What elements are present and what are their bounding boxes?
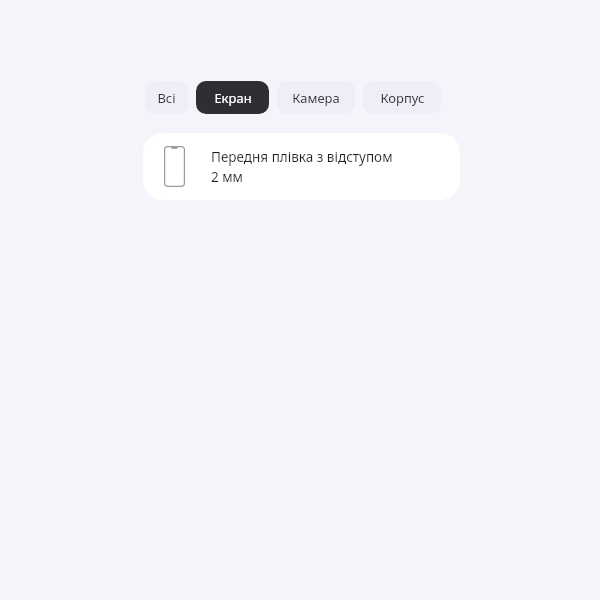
button[interactable]: Всі: [145, 81, 188, 114]
staticText: Передня плівка з відступом 2 мм: [211, 148, 393, 186]
staticText: Корпус: [380, 89, 425, 107]
staticText: Всі: [157, 89, 176, 107]
button[interactable]: Екран: [196, 81, 269, 114]
button[interactable]: Корпус: [363, 81, 441, 114]
button[interactable]: Phone screen: [143, 133, 460, 200]
staticText: Камера: [292, 89, 340, 107]
other: Phone screen: [164, 146, 185, 187]
button[interactable]: Камера: [277, 81, 355, 114]
staticText: Екран: [214, 89, 252, 107]
